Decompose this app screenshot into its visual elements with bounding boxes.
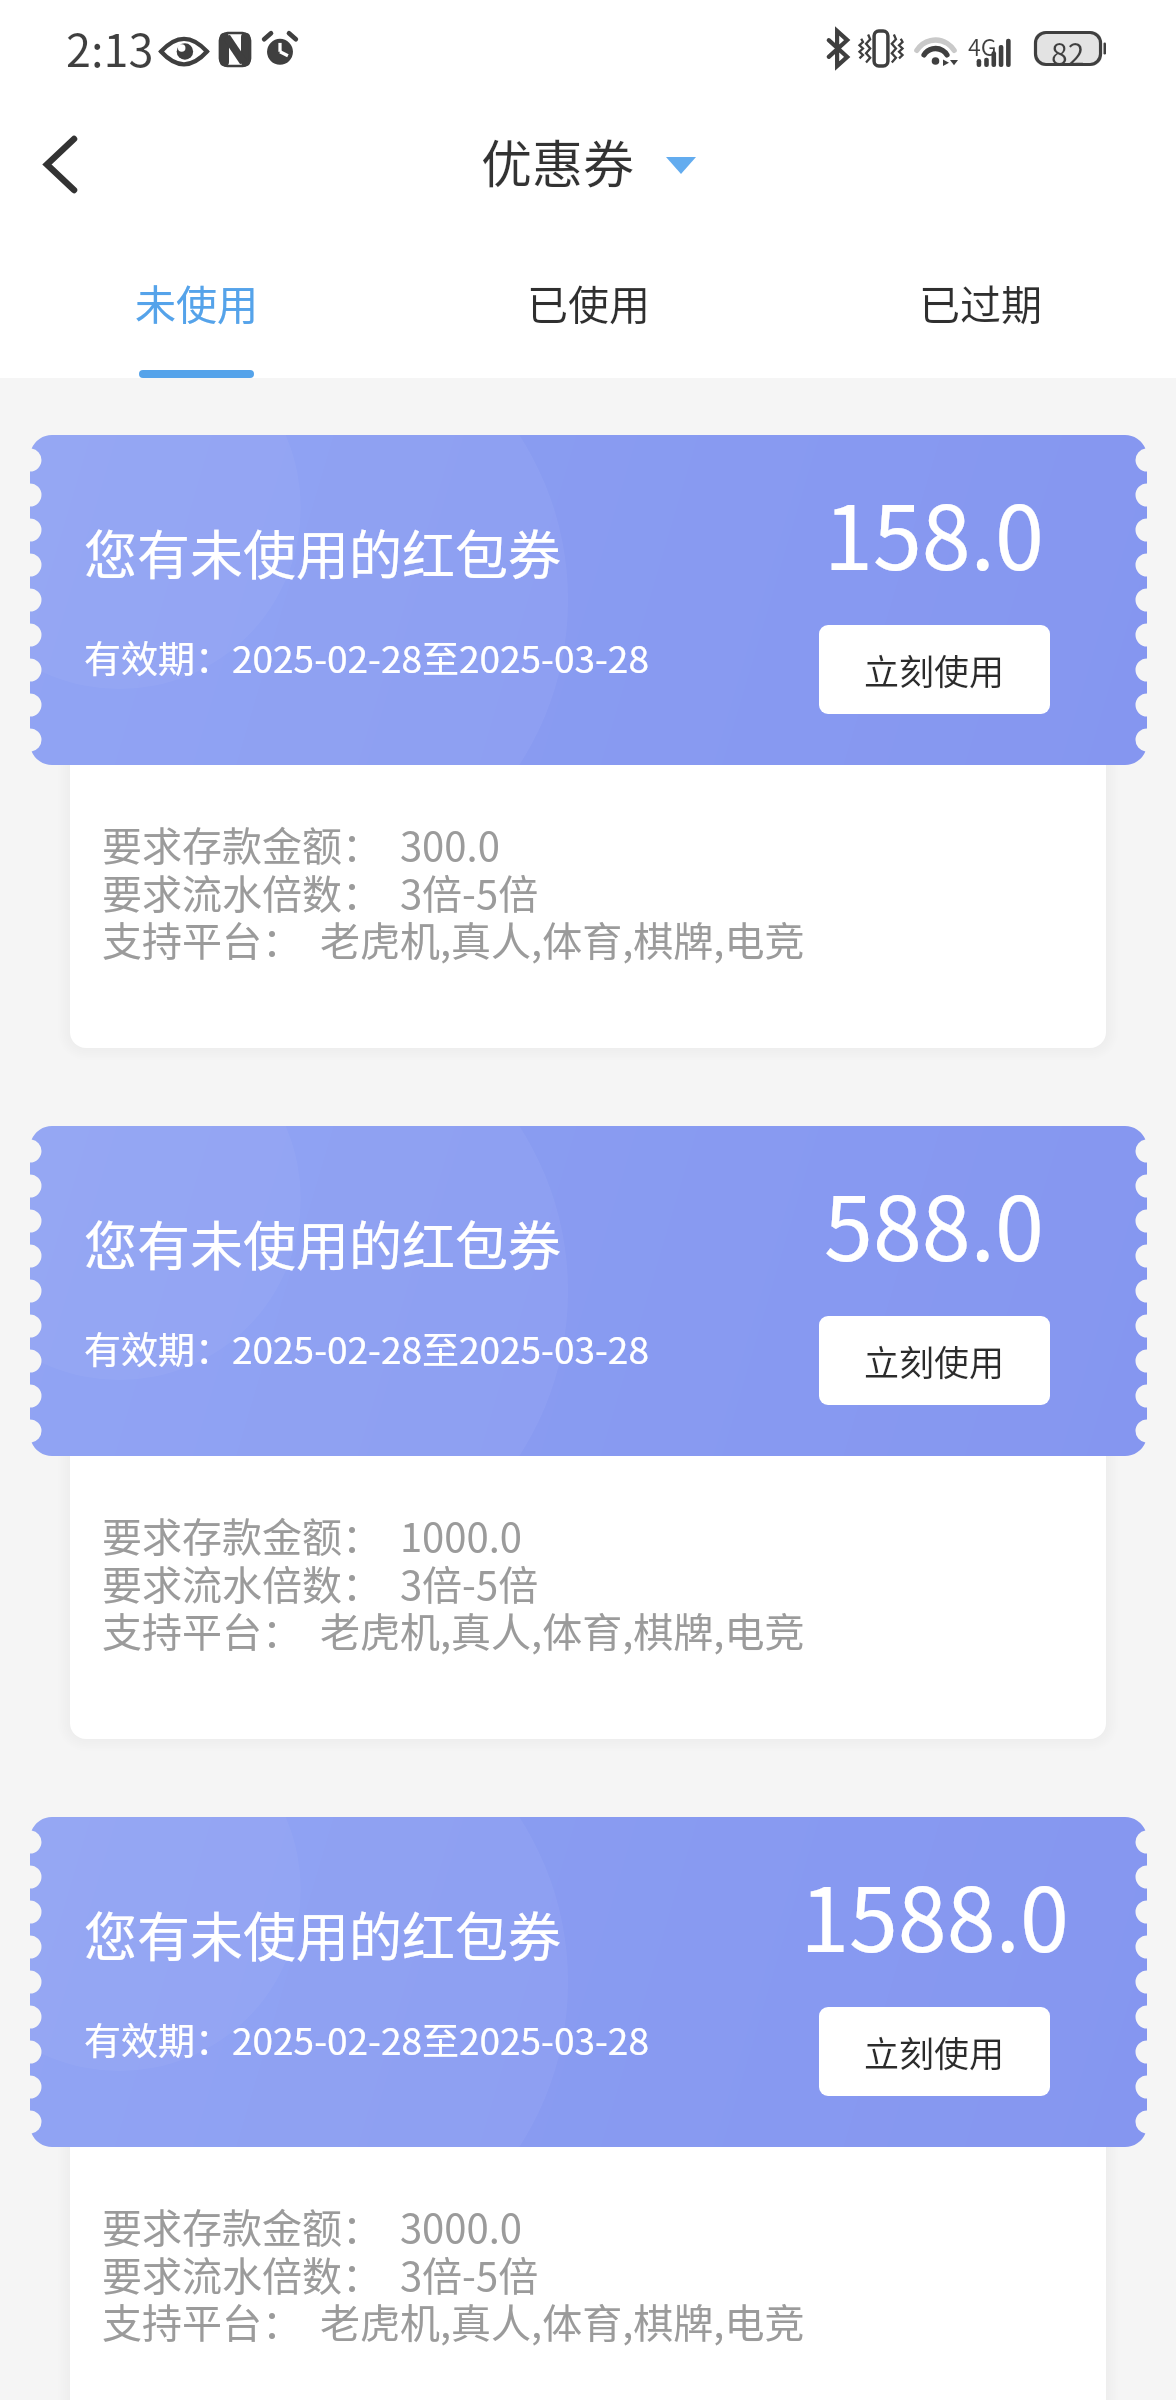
staticText: 立刻使用	[864, 1335, 1005, 1386]
staticText: 您有未使用的红包券	[84, 514, 561, 591]
staticText: 未使用	[135, 272, 258, 331]
staticText: 1588.0	[800, 1850, 1069, 1977]
staticText: 有效期：2025-02-28至2025-03-28	[84, 1321, 649, 1375]
button[interactable]: Back	[18, 122, 102, 206]
staticText: 要求存款金额： 300.0 要求流水倍数： 3倍-5倍 支持平台： 老虎机,真人…	[102, 815, 805, 967]
staticText: 2:13	[66, 15, 154, 80]
button[interactable]: 已使用	[392, 272, 784, 378]
staticText: 您有未使用的红包券	[84, 1205, 561, 1282]
staticText: 有效期：2025-02-28至2025-03-28	[84, 2012, 649, 2066]
button[interactable]: 立刻使用	[819, 2007, 1050, 2096]
staticText: 立刻使用	[864, 2026, 1005, 2077]
button[interactable]: 未使用	[0, 272, 392, 378]
button[interactable]: 您有未使用的红包券	[30, 435, 1147, 765]
staticText: 有效期：2025-02-28至2025-03-28	[84, 630, 649, 684]
staticText: 要求存款金额： 1000.0 要求流水倍数： 3倍-5倍 支持平台： 老虎机,真…	[102, 1506, 805, 1658]
button[interactable]: 已过期	[784, 272, 1176, 378]
button[interactable]: 优惠券	[481, 124, 693, 204]
staticText: 158.0	[824, 468, 1044, 595]
staticText: 588.0	[824, 1159, 1044, 1286]
staticText: 82	[1051, 30, 1085, 65]
staticText: 立刻使用	[864, 644, 1005, 695]
button[interactable]: 立刻使用	[819, 1316, 1050, 1405]
button[interactable]: 您有未使用的红包券	[30, 1126, 1147, 1456]
button[interactable]: 您有未使用的红包券	[30, 1817, 1147, 2147]
button[interactable]: 立刻使用	[819, 625, 1050, 714]
staticText: 4G	[968, 29, 997, 62]
staticText: 要求存款金额： 3000.0 要求流水倍数： 3倍-5倍 支持平台： 老虎机,真…	[102, 2197, 805, 2349]
staticText: 已使用	[527, 272, 650, 331]
staticText: 优惠券	[481, 124, 635, 198]
staticText: 您有未使用的红包券	[84, 1896, 561, 1973]
staticText: 已过期	[919, 272, 1042, 331]
